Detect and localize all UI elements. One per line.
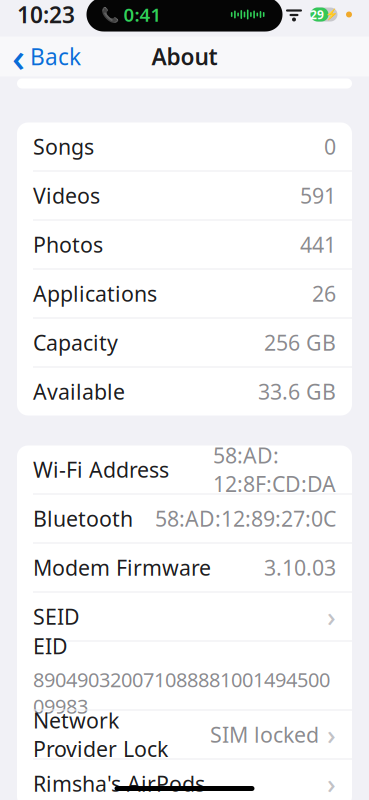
button[interactable]: SEID (17, 592, 352, 640)
staticText: 256 GB (264, 328, 336, 357)
button[interactable]: Capacity (17, 318, 352, 366)
staticText: SEID (33, 602, 80, 631)
staticText: Rimsha's AirPods (33, 769, 205, 798)
staticText: Bluetooth (33, 504, 133, 533)
staticText: 33.6 GB (258, 377, 336, 406)
button[interactable]: Available (17, 367, 352, 415)
staticText: 3.10.03 (264, 553, 336, 582)
staticText: › (327, 717, 336, 752)
button[interactable]: Modem Firmware (17, 543, 352, 591)
staticText: 29 (310, 6, 324, 22)
staticText: Available (33, 377, 125, 406)
button[interactable]: Bluetooth (17, 494, 352, 542)
staticText: ⚡ (325, 8, 338, 21)
staticText: 591 (300, 181, 336, 210)
staticText: SIM locked (210, 720, 319, 749)
staticText: 89049032007108888100149450009983 (33, 666, 330, 719)
staticText: 26 (312, 279, 336, 308)
staticText: Applications (33, 279, 157, 308)
staticText: 10:23 (17, 0, 75, 29)
staticText: › (327, 599, 336, 634)
staticText: Photos (33, 230, 103, 259)
staticText: 58:AD:12:8F:CD:DA (213, 441, 336, 498)
staticText: Capacity (33, 328, 118, 357)
button[interactable]: EID (17, 641, 352, 709)
staticText: Songs (33, 132, 94, 161)
staticText: Wi-Fi Address (33, 455, 169, 484)
button[interactable]: Photos (17, 220, 352, 268)
button[interactable]: Network Provider Lock (17, 710, 352, 758)
staticText: › (327, 766, 336, 800)
staticText: 58:AD:12:89:27:0C (155, 504, 336, 533)
staticText: EID (33, 632, 68, 660)
staticText: 0 (324, 132, 336, 161)
button[interactable]: Rimsha's AirPods (17, 759, 352, 800)
button[interactable]: Wi-Fi Address (17, 445, 352, 493)
staticText: 📞 (100, 6, 118, 23)
button[interactable]: ‹ (0, 36, 93, 76)
button[interactable]: Videos (17, 171, 352, 219)
staticText: Modem Firmware (33, 553, 211, 582)
staticText: ‹ (12, 30, 25, 83)
staticText: About (151, 41, 217, 71)
staticText: 0:41 (118, 2, 161, 27)
button[interactable]: Songs (17, 122, 352, 170)
staticText: Videos (33, 181, 100, 210)
staticText: Network Provider Lock (33, 706, 168, 763)
staticText: Back (30, 41, 81, 71)
staticText: 441 (300, 230, 336, 259)
button[interactable]: Applications (17, 269, 352, 317)
